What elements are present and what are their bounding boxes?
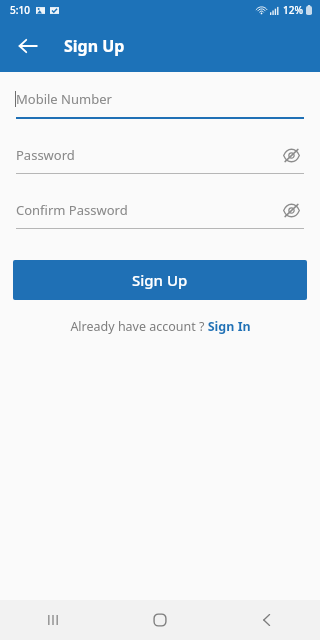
button[interactable]: Password	[16, 144, 304, 174]
staticText: 12%	[283, 3, 303, 17]
button[interactable]: Already have account ? Sign In	[70, 318, 251, 335]
button[interactable]: Back	[8, 26, 48, 66]
staticText: Mobile Number	[16, 90, 112, 108]
button[interactable]: Confirm Password	[16, 199, 304, 229]
staticText: Sign Up	[64, 35, 125, 57]
button[interactable]: Sign Up	[13, 260, 307, 300]
button[interactable]: Show password	[278, 199, 304, 221]
button[interactable]: Show password	[278, 144, 304, 166]
button[interactable]: Back	[237, 600, 297, 640]
button[interactable]: Home	[130, 600, 190, 640]
staticText: Already have account ? Sign In	[70, 318, 251, 335]
staticText: Sign Up	[132, 270, 188, 290]
staticText: 5:10	[10, 3, 30, 17]
staticText: Confirm Password	[16, 201, 128, 219]
staticText: Password	[16, 146, 75, 164]
button[interactable]: Recent apps	[23, 600, 83, 640]
button[interactable]: Mobile Number	[16, 88, 304, 119]
